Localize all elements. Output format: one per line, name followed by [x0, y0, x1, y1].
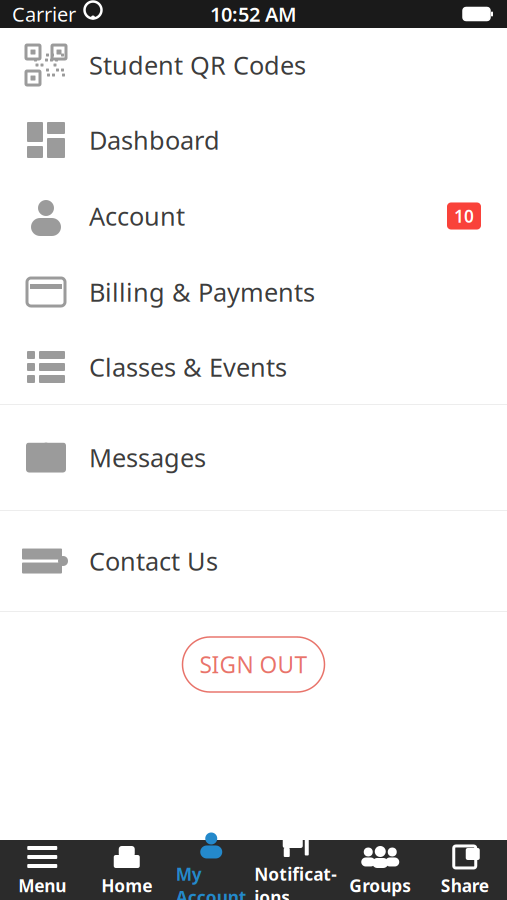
- staticText: Notifications: [254, 862, 337, 900]
- button[interactable]: Share: [422, 840, 507, 900]
- button[interactable]: My Account: [169, 840, 253, 900]
- staticText: Share: [441, 874, 489, 897]
- staticText: SIGN OUT: [199, 649, 307, 679]
- button[interactable]: Account: [0, 178, 507, 254]
- staticText: Classes & Events: [89, 350, 287, 384]
- staticText: Dashboard: [89, 123, 220, 157]
- button[interactable]: Classes & Events: [0, 330, 507, 404]
- staticText: 10: [454, 204, 474, 227]
- button[interactable]: Menu: [0, 840, 84, 900]
- staticText: My Account: [176, 862, 247, 900]
- staticText: Student QR Codes: [89, 48, 306, 82]
- staticText: Groups: [349, 874, 411, 897]
- staticText: Menu: [18, 874, 66, 897]
- button[interactable]: Notifications: [253, 840, 338, 900]
- button[interactable]: Messages: [0, 405, 507, 510]
- staticText: Messages: [89, 441, 206, 474]
- staticText: Account: [89, 199, 185, 233]
- staticText: Carrier: [12, 1, 76, 27]
- staticText: Home: [101, 874, 152, 897]
- button[interactable]: Groups: [338, 840, 422, 900]
- button[interactable]: Contact Us: [0, 511, 507, 611]
- button[interactable]: Student QR Codes: [0, 28, 507, 102]
- staticText: Contact Us: [89, 544, 218, 578]
- staticText: 10:52 AM: [210, 1, 297, 27]
- button[interactable]: SIGN OUT: [182, 637, 324, 692]
- staticText: Billing & Payments: [89, 275, 315, 309]
- button[interactable]: Dashboard: [0, 102, 507, 178]
- button[interactable]: Home: [84, 840, 169, 900]
- button[interactable]: Billing & Payments: [0, 254, 507, 330]
